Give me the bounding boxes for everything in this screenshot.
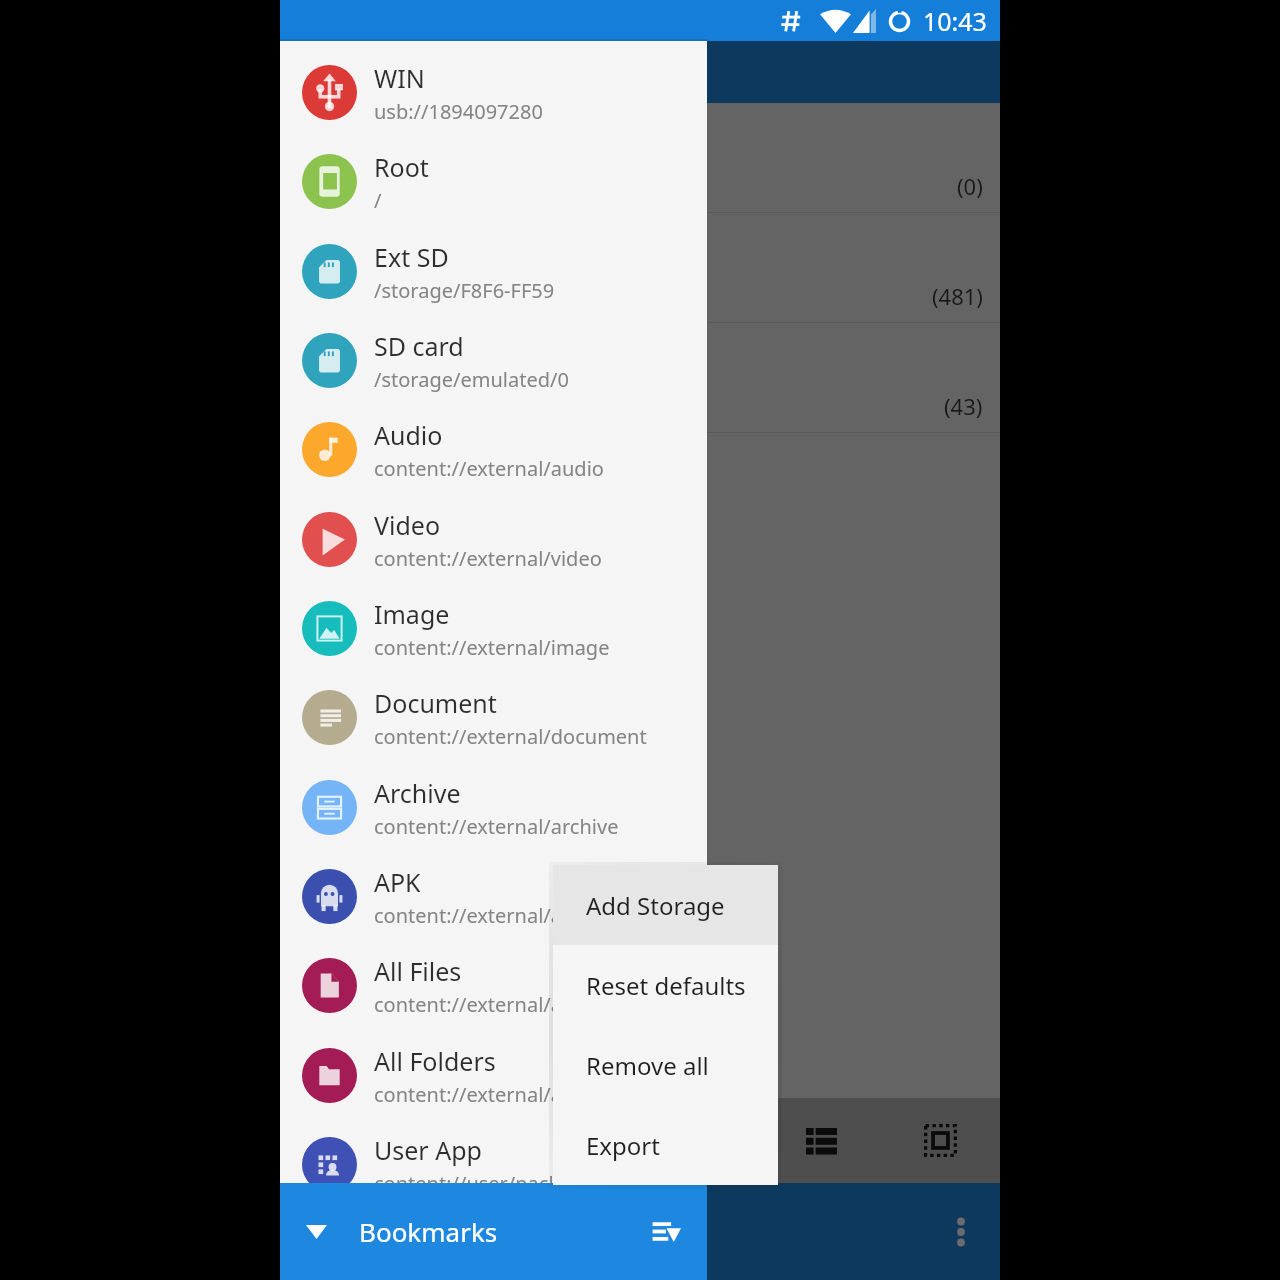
- staticText: Reset defaults: [586, 969, 746, 1002]
- button[interactable]: Add Storage: [553, 865, 778, 945]
- staticText: content://external/a: [374, 902, 562, 929]
- staticText: /storage/F8F6-FF59: [374, 277, 555, 304]
- button[interactable]: All Files: [280, 941, 707, 1030]
- button[interactable]: (481): [280, 213, 1000, 323]
- button[interactable]: (0): [280, 103, 1000, 213]
- staticText: Document: [374, 686, 497, 720]
- button[interactable]: Video: [280, 495, 707, 584]
- staticText: Video: [374, 508, 441, 542]
- staticText: User App: [374, 1133, 482, 1167]
- staticText: Remove all: [586, 1049, 709, 1082]
- staticText: Ext SD: [374, 240, 449, 274]
- staticText: Audio: [374, 418, 443, 452]
- button[interactable]: Root: [280, 137, 707, 226]
- staticText: content://external/video: [374, 545, 602, 572]
- button[interactable]: (43): [280, 323, 1000, 433]
- button[interactable]: Remove all: [553, 1025, 778, 1105]
- button[interactable]: More options: [919, 1190, 1003, 1274]
- staticText: content://external/archive: [374, 813, 619, 840]
- button[interactable]: Reset defaults: [553, 945, 778, 1025]
- staticText: content://external/document: [374, 723, 647, 750]
- staticText: Image: [374, 597, 450, 631]
- staticText: APK: [374, 865, 421, 899]
- button[interactable]: WIN: [280, 48, 707, 137]
- staticText: content://external/image: [374, 634, 610, 661]
- staticText: content://external/a: [374, 1081, 562, 1108]
- button[interactable]: Image: [280, 584, 707, 673]
- button[interactable]: Sort: [631, 1183, 701, 1280]
- button[interactable]: All Folders: [280, 1031, 707, 1120]
- staticText: (0): [957, 171, 983, 201]
- button[interactable]: User App: [280, 1120, 707, 1209]
- staticText: All Folders: [374, 1044, 496, 1078]
- staticText: All Files: [374, 954, 462, 988]
- button[interactable]: Ext SD: [280, 227, 707, 316]
- staticText: WIN: [374, 61, 425, 95]
- staticText: Root: [374, 150, 429, 184]
- button[interactable]: APK: [280, 852, 707, 941]
- staticText: content://user/pack: [374, 1170, 560, 1197]
- staticText: usb://1894097280: [374, 98, 543, 125]
- staticText: Bookmarks: [359, 1214, 498, 1249]
- button[interactable]: Bookmarks: [280, 1183, 707, 1280]
- button[interactable]: List view: [791, 1098, 851, 1183]
- staticText: /storage/emulated/0: [374, 366, 569, 393]
- button[interactable]: Audio: [280, 405, 707, 494]
- button[interactable]: SD card: [280, 316, 707, 405]
- button[interactable]: Select all: [910, 1098, 970, 1183]
- staticText: content://external/a: [374, 991, 562, 1018]
- staticText: Add Storage: [586, 889, 725, 922]
- staticText: (43): [944, 391, 983, 421]
- staticText: 10:43: [923, 4, 987, 38]
- staticText: Export: [586, 1129, 660, 1162]
- staticText: Archive: [374, 776, 461, 810]
- button[interactable]: Document: [280, 673, 707, 762]
- staticText: /: [374, 187, 382, 214]
- staticText: content://external/audio: [374, 455, 604, 482]
- staticText: SD card: [374, 329, 464, 363]
- button[interactable]: Archive: [280, 763, 707, 852]
- button[interactable]: Export: [553, 1105, 778, 1185]
- staticText: (481): [932, 281, 983, 311]
